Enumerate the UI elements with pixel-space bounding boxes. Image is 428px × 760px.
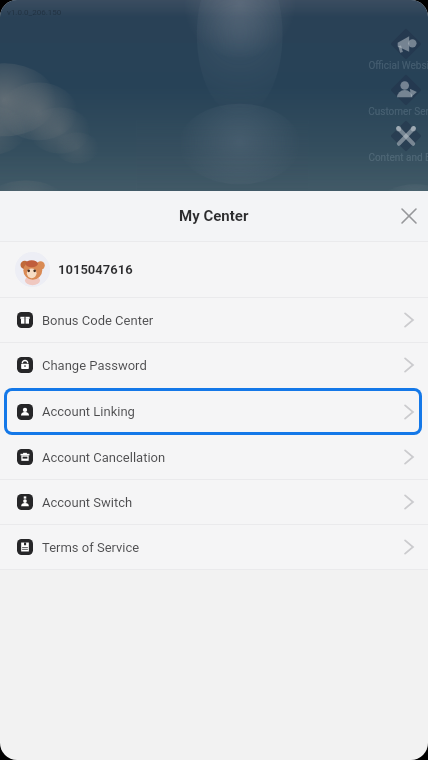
staticText: Official Website <box>368 60 428 72</box>
staticText: 1015047616 <box>58 262 133 277</box>
staticText: Account Switch <box>42 495 133 510</box>
staticText: My Center <box>179 207 249 225</box>
staticText: Content and Bugs <box>368 152 428 164</box>
button[interactable]: Customer Service <box>386 74 428 120</box>
staticText: Account Cancellation <box>42 450 166 465</box>
button[interactable]: Close <box>384 191 428 241</box>
staticText: Terms of Service <box>42 540 140 555</box>
button[interactable]: Content and Bugs <box>386 120 428 166</box>
staticText: Customer Service <box>368 106 428 118</box>
staticText: Change Password <box>42 358 147 373</box>
button[interactable]: Change Password <box>0 343 428 388</box>
staticText: Bonus Code Center <box>42 313 154 328</box>
button[interactable]: Official Website <box>386 28 428 74</box>
button[interactable]: Bonus Code Center <box>0 298 428 343</box>
button[interactable]: Account Linking <box>7 391 419 432</box>
button[interactable]: Account Cancellation <box>0 435 428 480</box>
button[interactable]: Account Switch <box>0 480 428 525</box>
staticText: Account Linking <box>42 404 135 419</box>
button[interactable]: Terms of Service <box>0 525 428 570</box>
staticText: v1.0.0_206.150 <box>7 8 62 17</box>
button[interactable]: 1015047616 <box>0 242 428 297</box>
